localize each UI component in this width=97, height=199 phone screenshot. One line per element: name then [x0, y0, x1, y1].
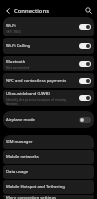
staticText: SIM manager	[6, 139, 33, 145]
staticText: Mobile Hotspot and Tethering	[6, 184, 65, 190]
staticText: Wi-Fi Calling	[6, 43, 31, 49]
staticText: Ultra-wideband (UWB)	[6, 91, 50, 97]
staticText: Connections	[14, 7, 50, 15]
button[interactable]: Turn off	[79, 95, 91, 101]
button[interactable]: Turn off	[79, 24, 91, 30]
button[interactable]: Mobile Hotspot and Tethering	[3, 180, 94, 194]
button[interactable]: NFC and contactless payments	[3, 73, 94, 88]
button[interactable]: Turn off	[79, 61, 91, 67]
staticText: SKY-7B3C	[6, 29, 22, 34]
staticText: More connection settings	[6, 195, 56, 199]
button[interactable]: More connection settings	[3, 195, 94, 199]
staticText: Data usage	[6, 169, 29, 175]
staticText: NFC and contactless payments	[6, 78, 67, 84]
button[interactable]: Search	[83, 5, 94, 16]
button[interactable]: Turn off	[79, 78, 91, 84]
button[interactable]: Wi-Fi	[3, 17, 94, 36]
staticText: Mobile networks	[6, 154, 39, 160]
staticText: Wi-Fi	[6, 23, 16, 29]
button[interactable]: Mobile networks	[3, 150, 94, 164]
staticText: Airplane mode	[6, 117, 35, 123]
button[interactable]: Turn on	[79, 117, 91, 123]
button[interactable]: SIM manager	[3, 135, 94, 149]
button[interactable]: Bluetooth	[3, 56, 94, 71]
button[interactable]: Navigate up	[2, 5, 13, 16]
staticText: Identify the precise location of nearby …	[6, 97, 77, 106]
button[interactable]: Airplane mode	[3, 111, 94, 128]
button[interactable]: Data usage	[3, 165, 94, 179]
button[interactable]: Ultra-wideband (UWB)	[3, 90, 94, 106]
staticText: Not connected	[6, 65, 30, 70]
button[interactable]: Turn off	[79, 43, 91, 49]
button[interactable]: Wi-Fi Calling	[3, 38, 94, 54]
staticText: Bluetooth	[6, 59, 26, 65]
